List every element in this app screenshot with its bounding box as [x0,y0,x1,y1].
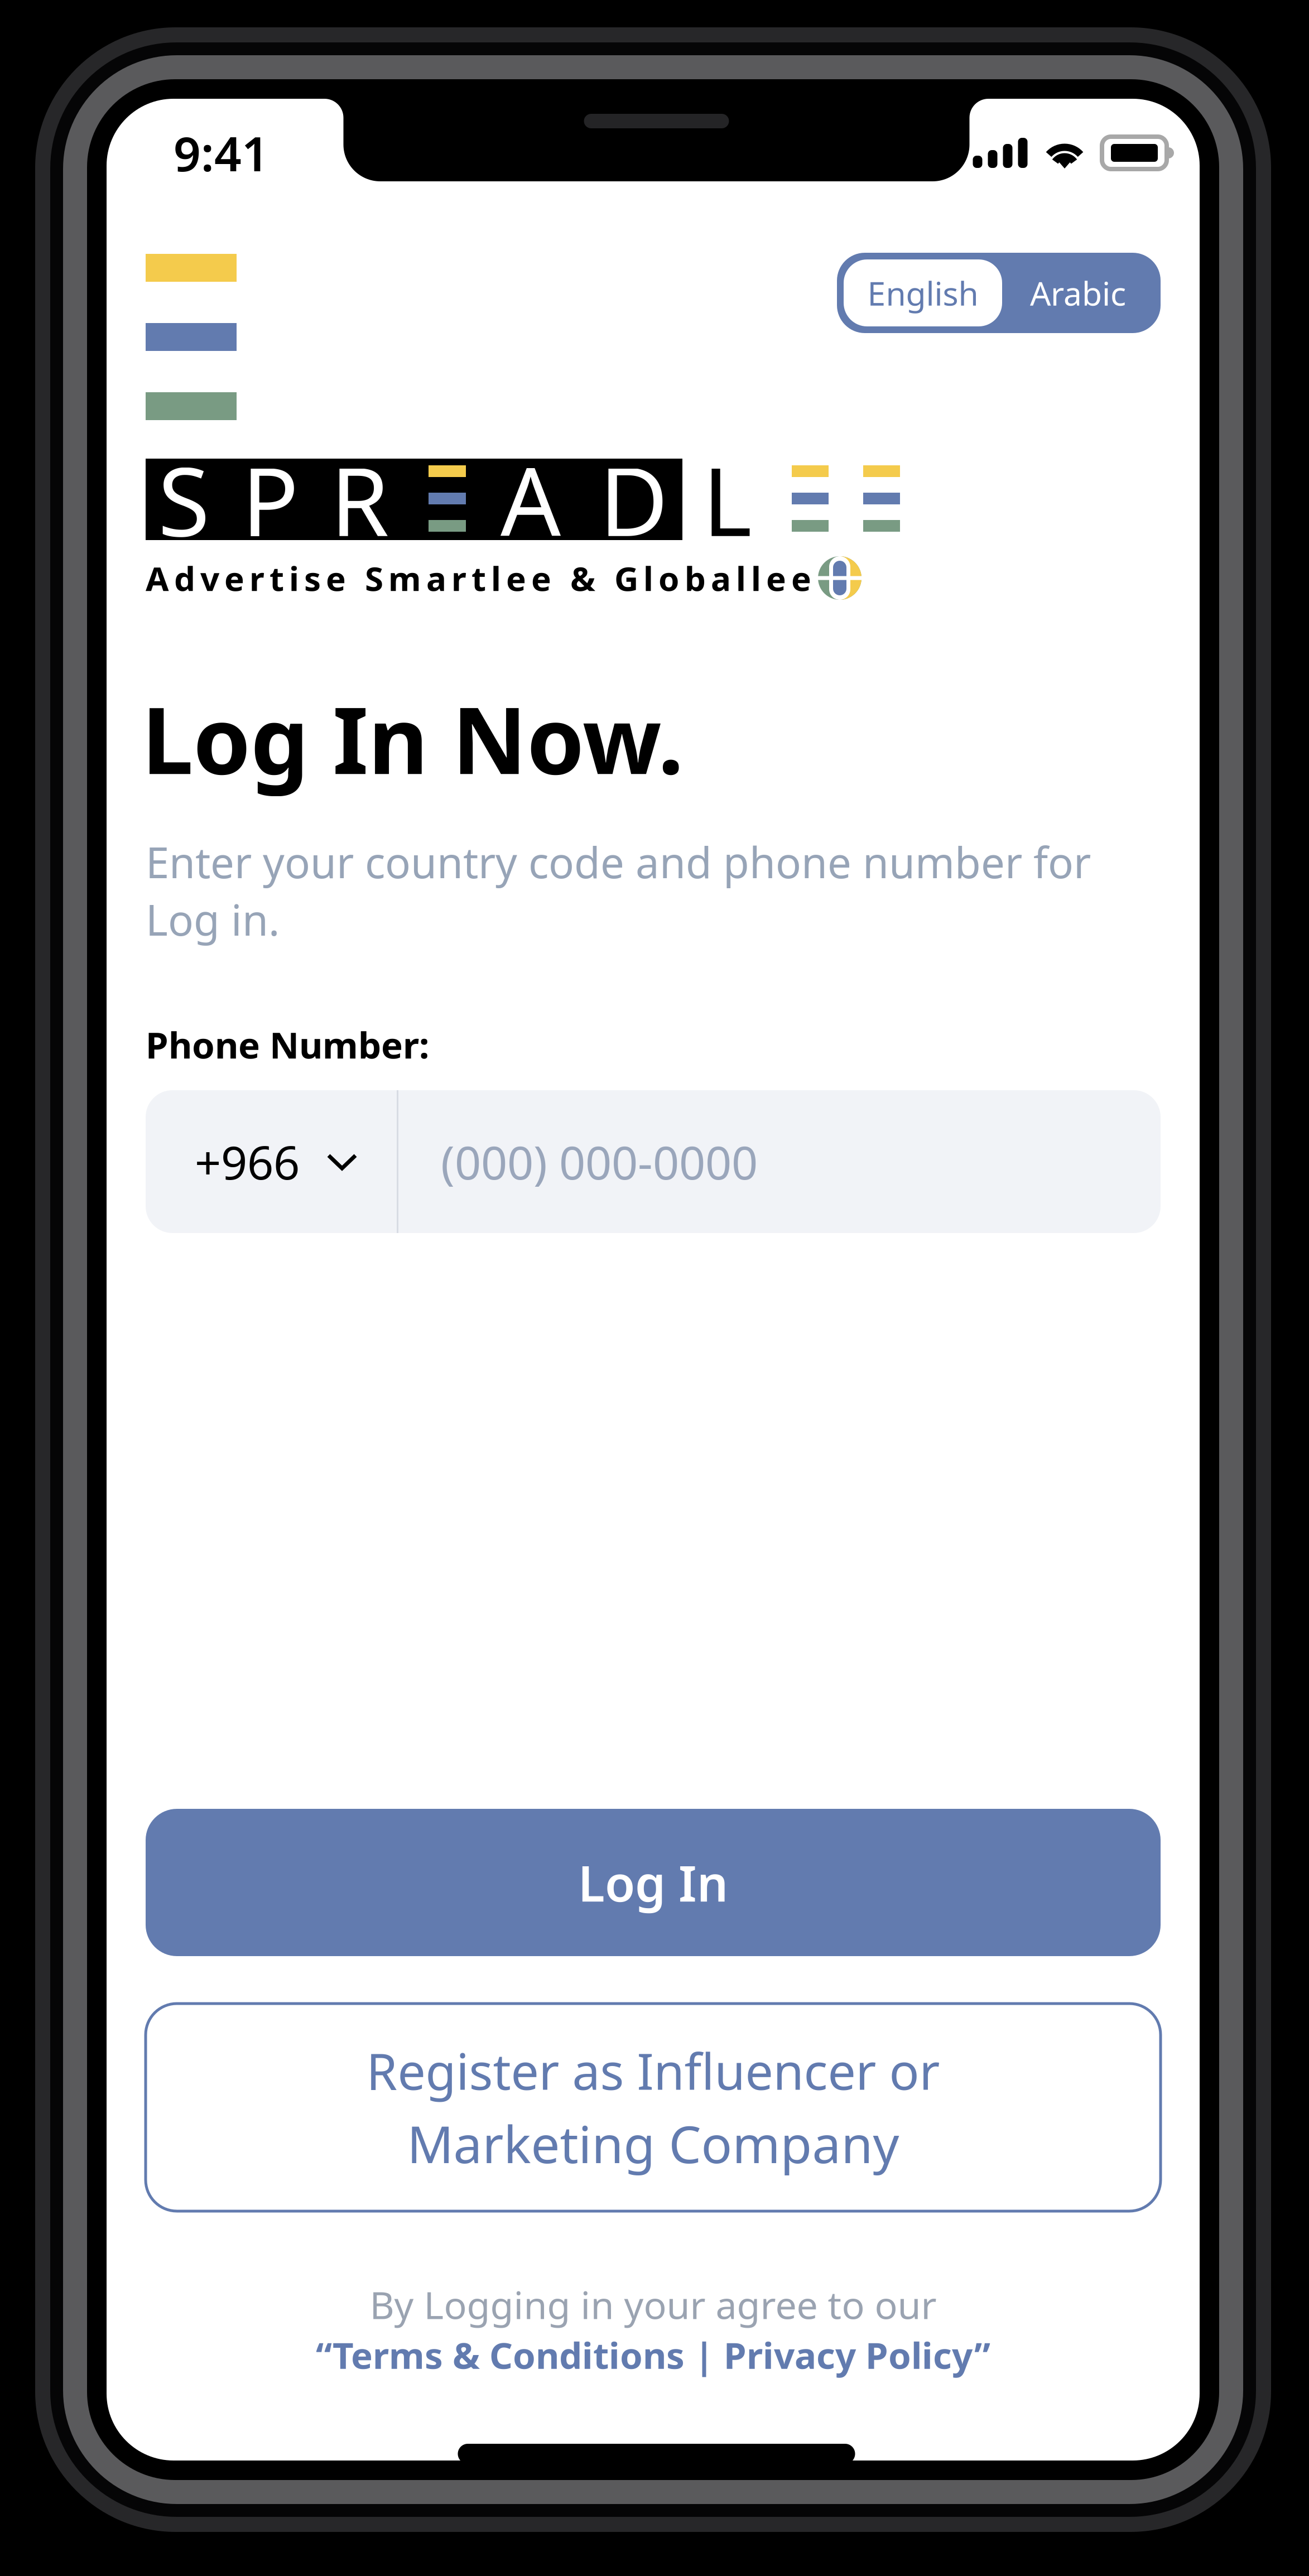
staticText: D [599,437,668,562]
staticText: Register as Influencer or [366,2037,940,2104]
button[interactable]: “Terms & Conditions | Privacy Policy” [146,2330,1161,2380]
button[interactable]: English [844,259,1002,326]
staticText: A [501,437,561,562]
staticText: Log In [578,1850,728,1915]
staticText: R [330,437,389,562]
staticText: Log In Now. [142,677,684,799]
button[interactable]: Arabic [1002,259,1154,326]
button[interactable]: +966 [146,1090,397,1233]
staticText: S [158,437,210,562]
staticText: English [867,271,978,315]
staticText: Log in. [146,891,280,947]
staticText: Arabic [1030,271,1126,315]
staticText: Marketing Company [407,2109,899,2177]
staticText: Enter your country code and phone number… [146,834,1091,890]
staticText: Phone Number: [146,1020,429,1069]
staticText: L [702,437,752,562]
staticText: 9:41 [174,121,269,184]
button[interactable]: Log In [146,1809,1161,1956]
staticText: (000) 000-0000 [441,1131,758,1192]
staticText: “Terms & Conditions | Privacy Policy” [316,2330,990,2379]
staticText: By Logging in your agree to our [370,2279,937,2330]
staticText: +966 [195,1131,300,1192]
button[interactable]: Register as Influencer or [146,2004,1161,2211]
staticText: Advertise Smartlee & Globallee [146,556,811,600]
staticText: P [242,437,299,562]
